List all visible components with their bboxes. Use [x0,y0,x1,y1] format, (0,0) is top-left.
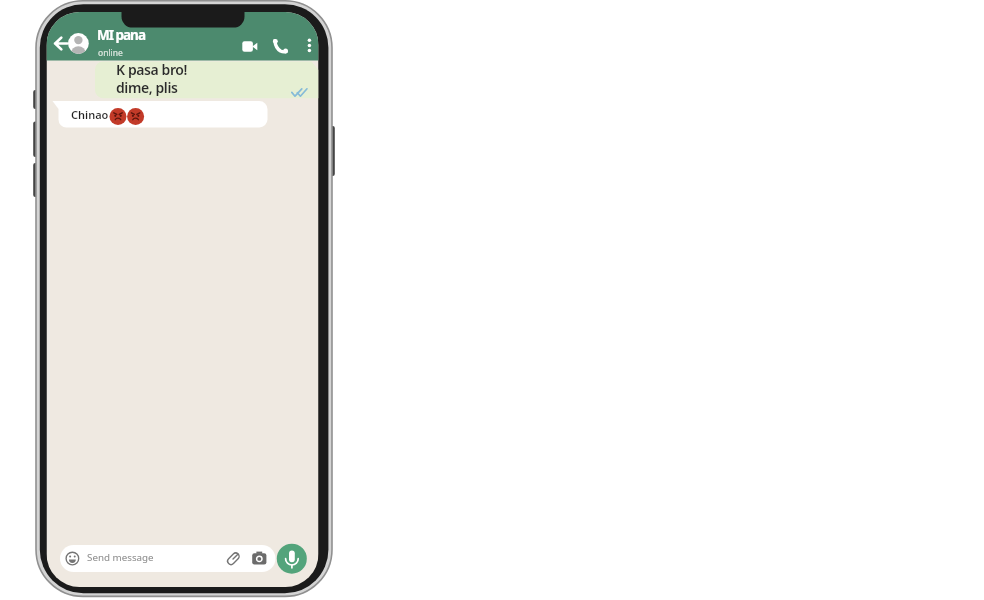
button[interactable] [277,544,307,574]
button[interactable] [66,31,91,56]
staticText: Send message [87,551,154,564]
button[interactable] [50,32,72,54]
staticText: dime, plis [116,78,178,97]
button[interactable] [60,545,275,572]
staticText: online [98,47,123,59]
staticText: K pasa bro! [116,60,188,79]
staticText: MI pana [97,26,145,44]
button[interactable] [300,34,319,56]
staticText: Chinao [71,107,109,122]
button[interactable] [269,34,291,56]
button[interactable] [238,35,260,57]
